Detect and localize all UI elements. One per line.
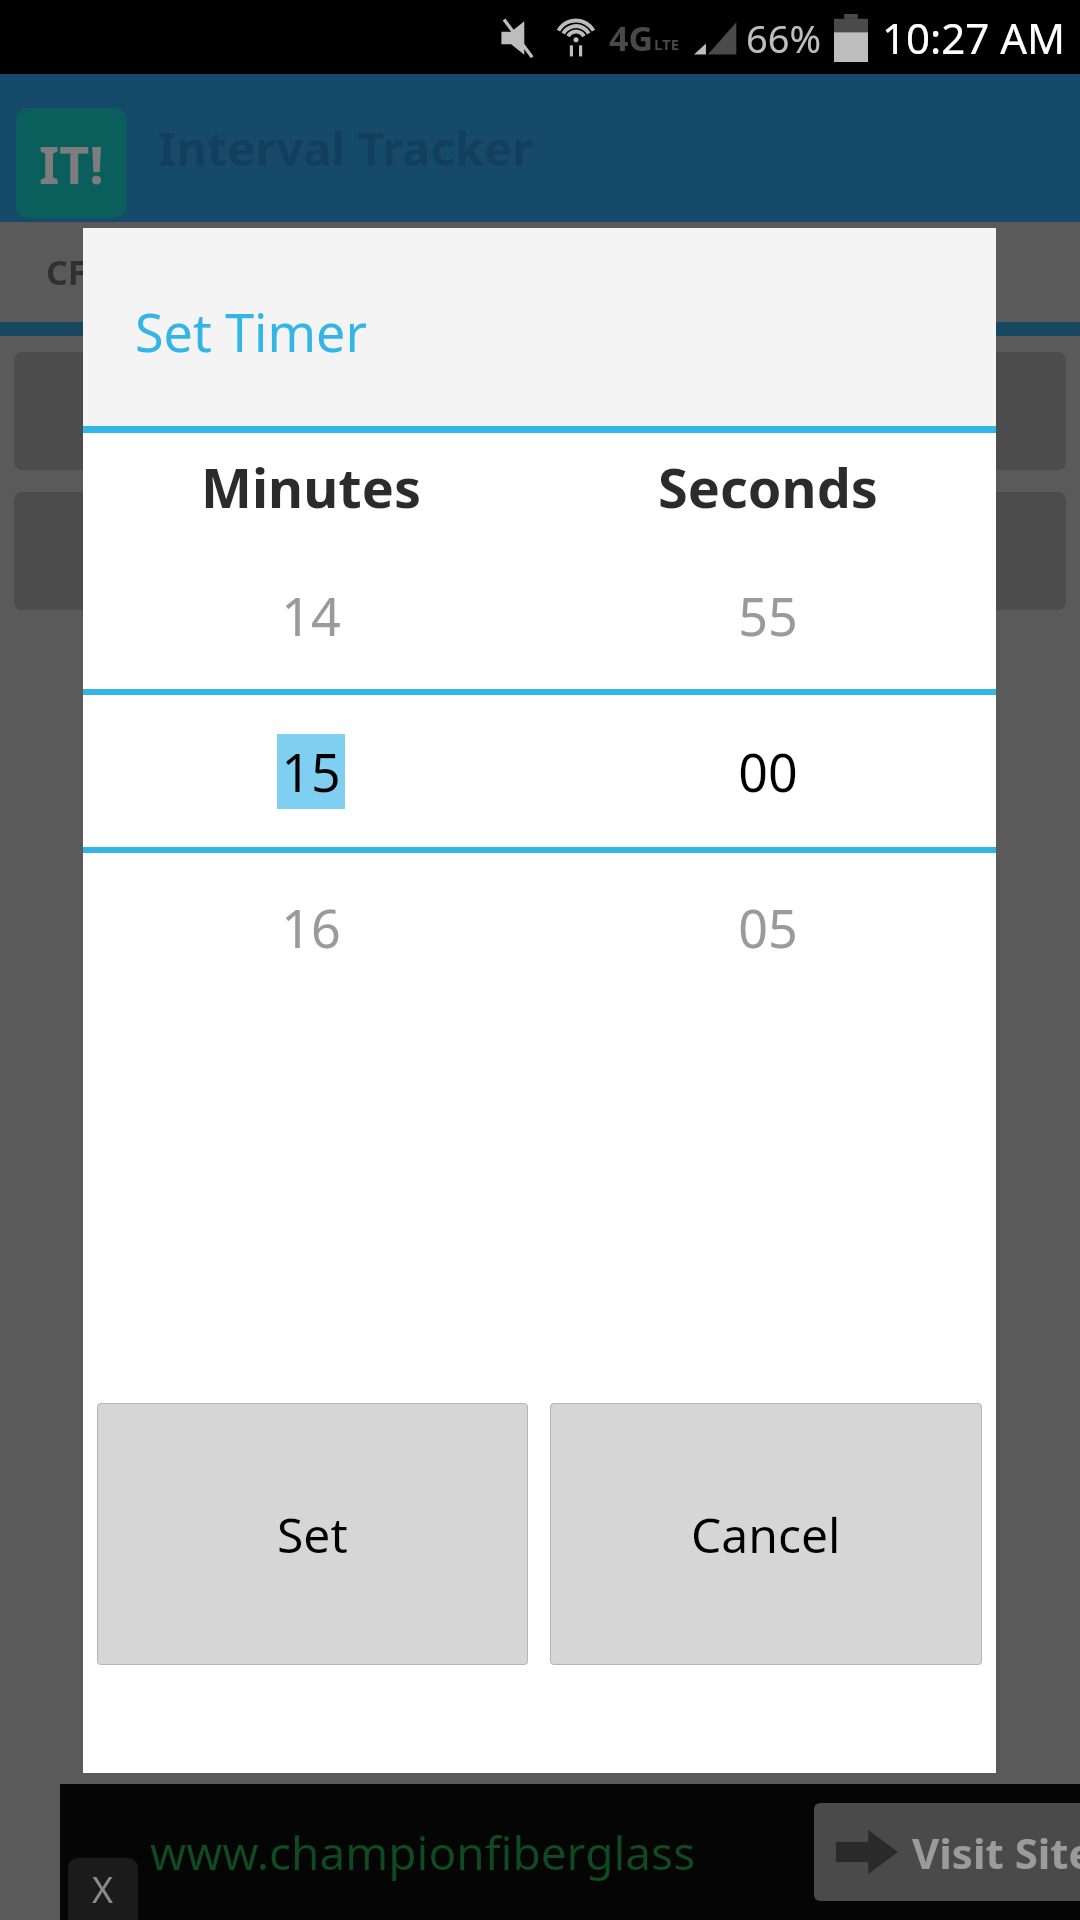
button[interactable]: Close ad (68, 1858, 138, 1920)
staticText: 05 (738, 892, 798, 963)
button[interactable]: 16 (83, 853, 539, 1001)
button[interactable]: 05 (539, 853, 996, 1001)
staticText: 66% (746, 12, 822, 64)
button[interactable]: 15 (83, 695, 539, 847)
staticText: Visit Site (912, 1824, 1080, 1881)
staticText: Set Timer (135, 296, 367, 367)
button[interactable]: 00 (539, 695, 996, 847)
staticText: 10:27 AM (882, 9, 1066, 66)
staticText: LTE (654, 34, 680, 54)
staticText: 14 (281, 580, 341, 651)
button[interactable]: www.championfiberglass (60, 1784, 1080, 1920)
staticText: Interval Tracker (158, 116, 533, 180)
button[interactable]: Visit Site (814, 1803, 1080, 1901)
staticText: X (92, 1865, 114, 1914)
button[interactable]: 14 (83, 541, 539, 689)
staticText: 4G (609, 15, 654, 61)
staticText: Set (277, 1502, 348, 1567)
staticText: Seconds (658, 450, 878, 524)
button[interactable]: Set (97, 1403, 528, 1665)
staticText: 15 (281, 736, 341, 807)
staticText: www.championfiberglass (150, 1821, 696, 1884)
button[interactable]: Cancel (550, 1403, 982, 1665)
staticText: 16 (281, 892, 341, 963)
staticText: Cancel (691, 1502, 841, 1567)
staticText: CF (46, 249, 87, 295)
button[interactable]: 55 (539, 541, 996, 689)
staticText: 55 (738, 580, 798, 651)
staticText: Minutes (201, 450, 422, 524)
staticText: 00 (738, 736, 798, 807)
staticText: IT! (39, 128, 104, 199)
